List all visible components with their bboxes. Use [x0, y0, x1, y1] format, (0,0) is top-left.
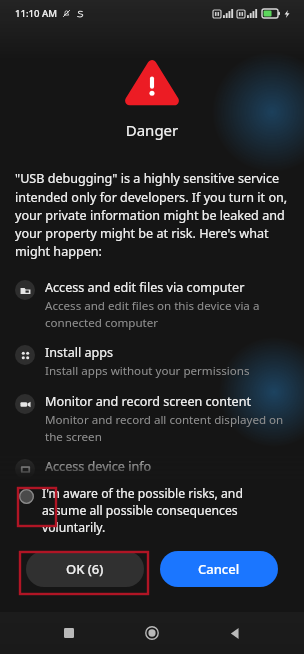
staticText: OK (6)	[66, 560, 104, 578]
staticText: "USB debugging" is a highly sensitive se…	[15, 170, 289, 259]
staticText: 11:10 AM	[15, 7, 58, 20]
button[interactable]: Cancel	[160, 551, 278, 587]
button[interactable]: OK (6)	[26, 551, 144, 587]
staticText: Monitor and record all content displayed…	[45, 412, 289, 444]
button[interactable]: I'm aware of the possible risks, and ass…	[15, 485, 286, 536]
staticText: Access and edit files on this device via…	[45, 298, 289, 330]
staticText: Access device info	[45, 458, 152, 475]
staticText: Monitor and record screen content	[45, 393, 251, 410]
staticText: I'm aware of the possible risks, and ass…	[42, 485, 286, 536]
staticText: Danger	[0, 120, 304, 140]
button[interactable]: Recent apps	[54, 618, 84, 648]
staticText: Install apps	[45, 344, 114, 361]
button[interactable]: Home	[137, 618, 167, 648]
staticText: Access and edit files via computer	[45, 279, 245, 296]
staticText: Cancel	[198, 560, 240, 578]
staticText: Install apps without your permissions	[45, 363, 250, 379]
button[interactable]: Back	[220, 618, 250, 648]
